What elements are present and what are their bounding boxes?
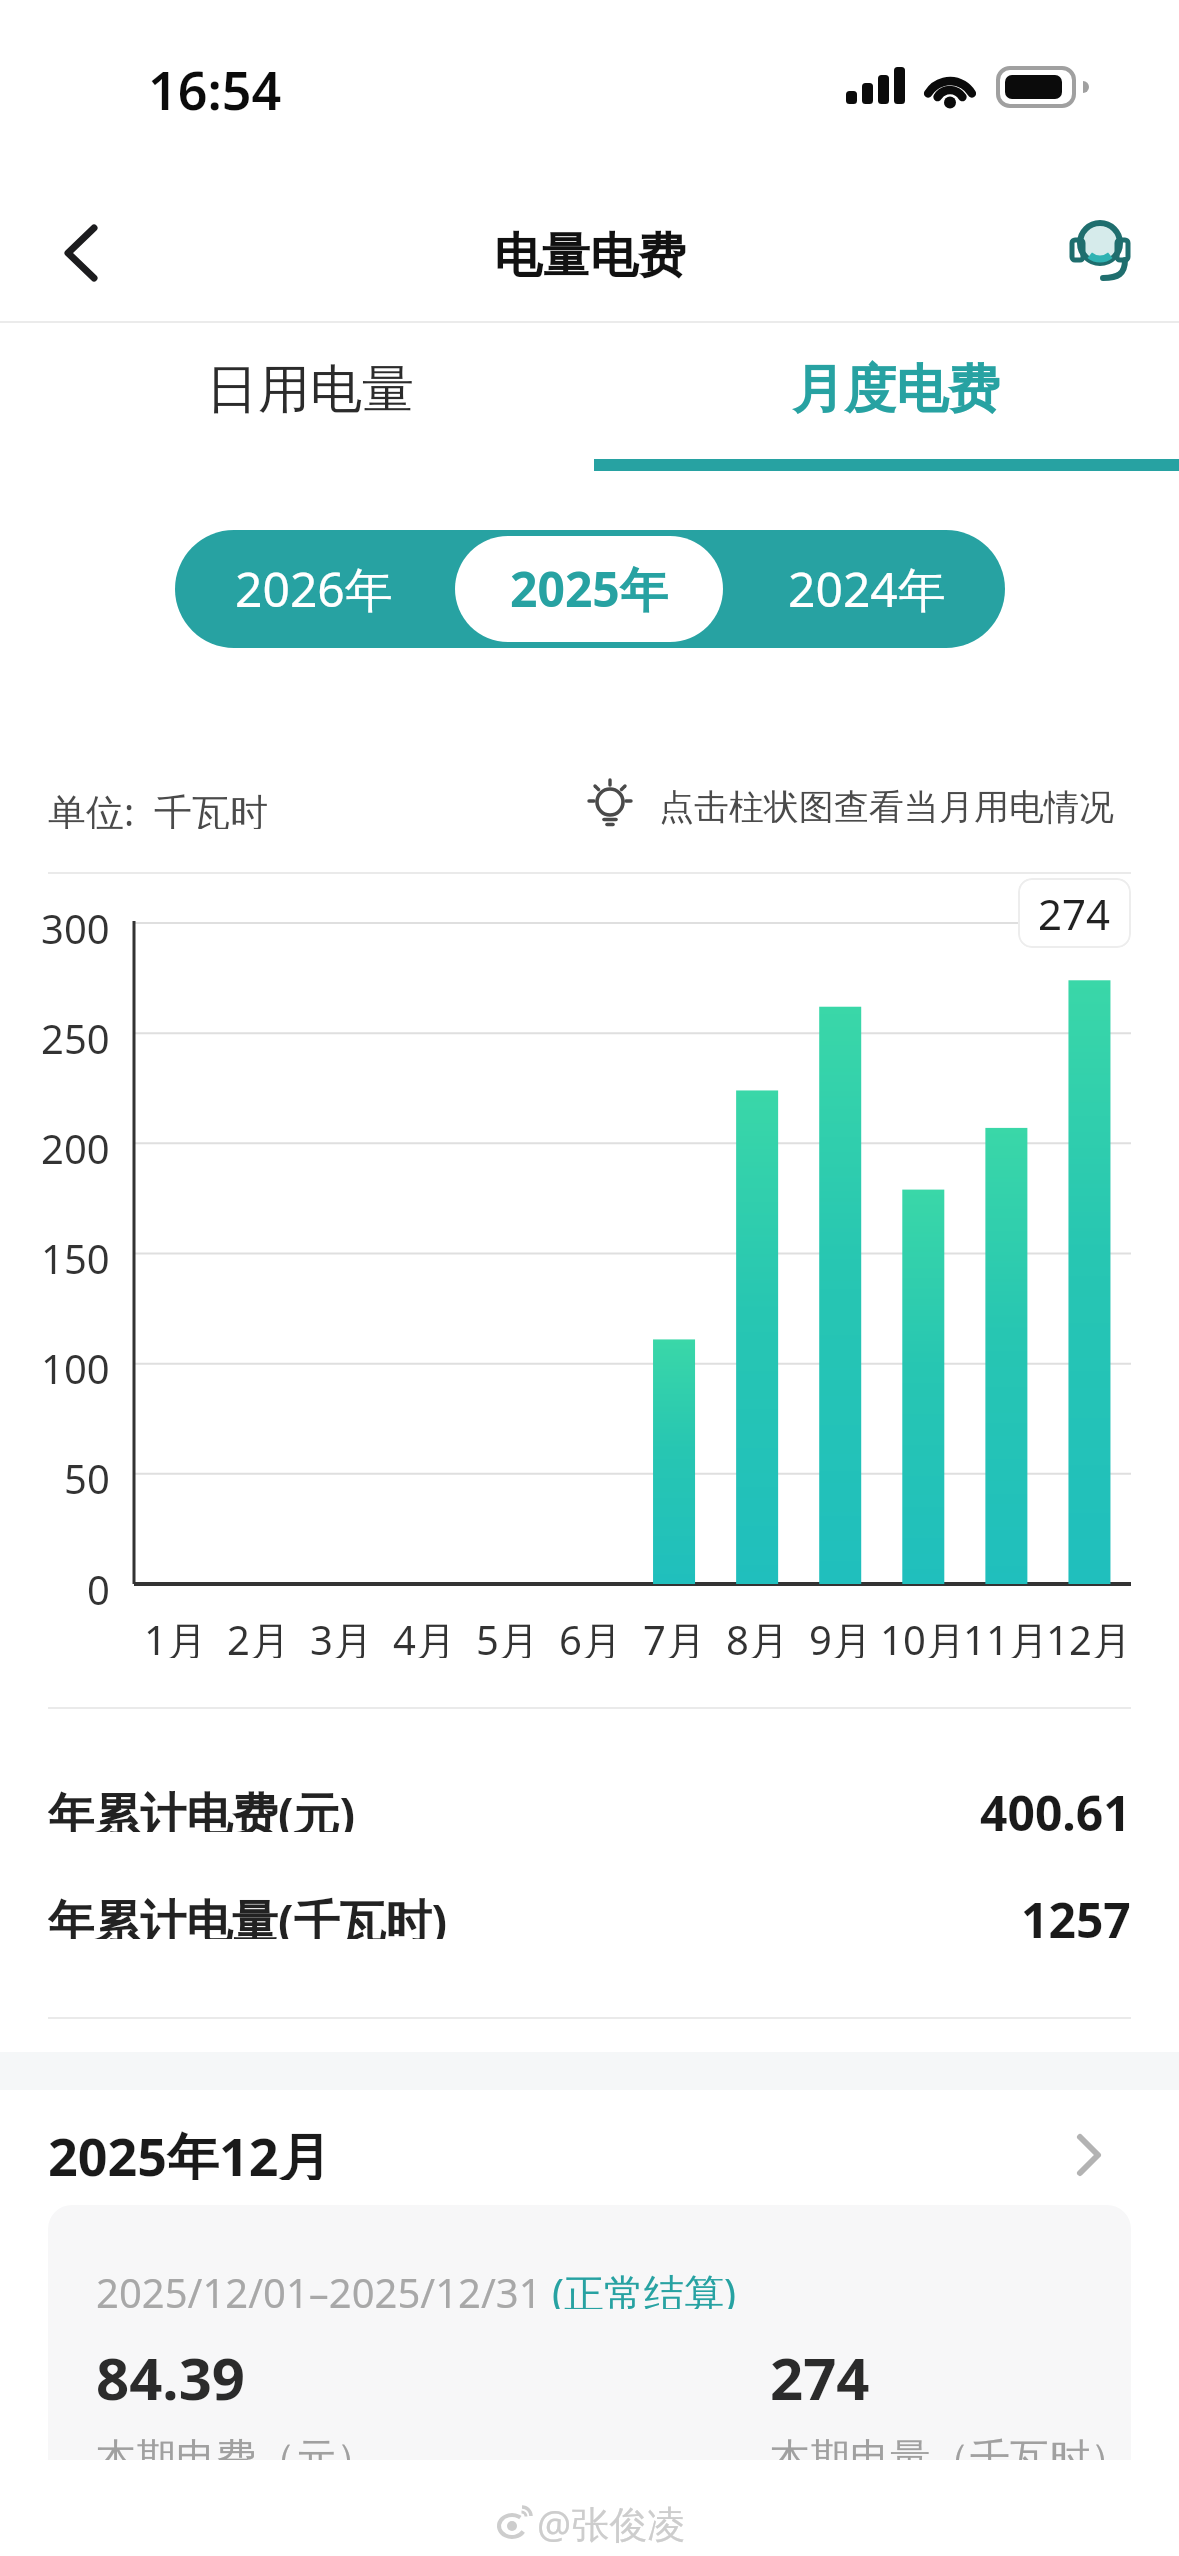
staticText: 月度电费	[792, 357, 1000, 423]
button[interactable]: 日用电量	[15, 330, 605, 450]
staticText: 2025年	[510, 556, 668, 622]
staticText: 1月	[144, 1612, 207, 1658]
button[interactable]	[48, 2118, 1131, 2182]
staticText: 单位: 千瓦时	[48, 785, 268, 829]
staticText: 2026年	[235, 556, 393, 622]
staticText: 250	[41, 1011, 110, 1055]
staticText: 200	[41, 1121, 110, 1165]
staticText: 0	[87, 1562, 110, 1606]
button[interactable]: 2025/12/01–2025/12/31	[48, 2205, 1131, 2460]
staticText: 本期电量（千瓦时）	[770, 2433, 1130, 2460]
staticText: 11月	[963, 1612, 1049, 1658]
staticText: 400.61	[980, 1780, 1131, 1834]
staticText: (正常结算)	[552, 2265, 736, 2309]
staticText: 年累计电费(元)	[48, 1782, 356, 1832]
staticText: 8月	[726, 1612, 789, 1658]
staticText: 2月	[227, 1612, 290, 1658]
staticText: 274	[770, 2338, 870, 2408]
staticText: 12月	[1046, 1612, 1132, 1658]
staticText: 4月	[393, 1612, 456, 1658]
staticText: 1257	[1021, 1887, 1131, 1941]
staticText: 50	[64, 1451, 110, 1495]
staticText: 6月	[559, 1612, 622, 1658]
staticText: @张俊凌	[537, 2497, 686, 2549]
staticText: 5月	[476, 1612, 539, 1658]
staticText: 电量电费	[494, 226, 686, 282]
staticText: 2025年12月	[48, 2120, 331, 2180]
staticText: 10月	[880, 1612, 966, 1658]
button[interactable]: 2025年	[455, 536, 723, 642]
staticText: 2025/12/01–2025/12/31	[96, 2265, 552, 2309]
staticText: 点击柱状图查看当月用电情况	[659, 785, 1114, 829]
button[interactable]	[1068, 218, 1132, 282]
staticText: 7月	[643, 1612, 706, 1658]
button[interactable]: 月度电费	[601, 330, 1179, 450]
staticText: 16:54	[148, 54, 282, 120]
button[interactable]: 2024年	[728, 530, 1005, 648]
staticText: 9月	[809, 1612, 872, 1658]
button[interactable]	[48, 222, 112, 286]
staticText: 2024年	[788, 556, 946, 622]
staticText: 274	[1038, 885, 1111, 942]
staticText: 84.39	[96, 2338, 246, 2408]
button[interactable]: 2026年	[175, 530, 452, 648]
staticText: 本期电费（元）	[96, 2433, 376, 2460]
staticText: 3月	[310, 1612, 373, 1658]
staticText: 年累计电量(千瓦时)	[48, 1889, 448, 1939]
staticText: 150	[41, 1231, 110, 1275]
staticText: 日用电量	[206, 357, 414, 423]
staticText: 100	[41, 1341, 110, 1385]
staticText: 300	[41, 901, 110, 945]
